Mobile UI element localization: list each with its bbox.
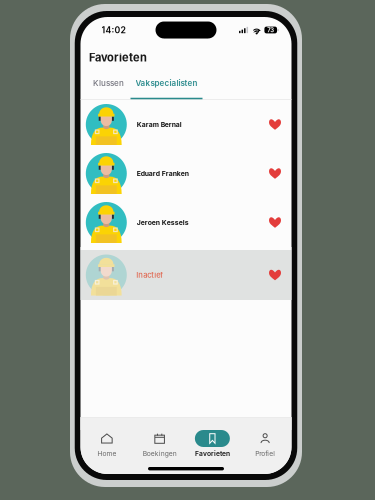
staticText: Jeroen Kessels [137,218,189,227]
button[interactable]: Profiel [239,430,292,457]
staticText: Profiel [255,449,275,458]
button[interactable]: Jeroen Kessels [80,198,291,247]
staticText: 14:02 [101,25,125,35]
button[interactable]: Eduard Franken [80,149,291,198]
staticText: Boekingen [143,449,177,458]
button[interactable]: Klussen [86,72,130,100]
staticText: 73 [267,26,274,34]
staticText: Inactief [136,270,163,280]
staticText: Eduard Franken [137,169,189,178]
staticText: Vakspecialisten [135,78,197,88]
button[interactable]: Home [80,430,133,457]
button[interactable]: Boekingen [133,430,186,457]
button[interactable]: Vakspecialisten [130,72,202,100]
staticText: Favorieten [195,449,230,458]
button[interactable]: Inactief [80,250,291,300]
button[interactable]: Favorieten [186,430,239,457]
staticText: Favorieten [89,51,147,64]
staticText: Karam Bernal [137,120,182,129]
button[interactable]: Karam Bernal [80,100,291,149]
staticText: Home [97,449,116,458]
staticText: Klussen [93,78,124,88]
